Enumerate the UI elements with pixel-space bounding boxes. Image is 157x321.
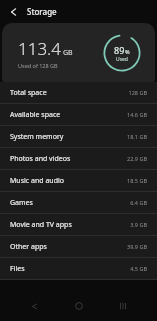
staticText: 39.9 GB [127,243,147,250]
staticText: Files [10,264,25,274]
staticText: 4.5 GB [130,265,147,272]
staticText: 128 GB [128,89,147,96]
staticText: 6.4 GB [130,199,147,206]
staticText: Movie and TV apps [10,220,72,230]
button[interactable]: Home [68,295,90,317]
button[interactable]: Total space [0,82,157,103]
staticText: Photos and videos [10,154,71,164]
staticText: Storage [27,6,57,17]
button[interactable]: 113.4 [2,23,155,82]
staticText: 89 [114,44,125,56]
button[interactable]: Back [23,295,45,317]
button[interactable]: System memory [0,126,157,147]
staticText: Games [10,198,33,208]
button[interactable]: Available space [0,104,157,125]
staticText: 18.1 GB [127,133,147,140]
staticText: 113.4 [18,37,61,60]
staticText: Used [116,56,128,63]
button[interactable]: Games [0,192,157,213]
staticText: Used of 128 GB [18,62,58,69]
button[interactable]: Recent apps [112,295,134,317]
staticText: 18.5 GB [127,177,147,184]
staticText: GB [63,48,73,58]
staticText: 22.9 GB [127,155,147,162]
staticText: Music and audio [10,176,64,186]
staticText: Available space [10,110,61,120]
staticText: % [125,48,130,55]
button[interactable]: Files [0,258,157,279]
button[interactable]: Other apps [0,236,157,257]
staticText: Total space [10,88,47,98]
staticText: System memory [10,132,64,142]
button[interactable]: Photos and videos [0,148,157,169]
staticText: Other apps [10,242,47,252]
staticText: 14.6 GB [127,111,147,118]
button[interactable]: Back [6,4,22,20]
button[interactable]: Movie and TV apps [0,214,157,235]
staticText: 3.9 GB [130,221,147,228]
button[interactable]: Music and audio [0,170,157,191]
